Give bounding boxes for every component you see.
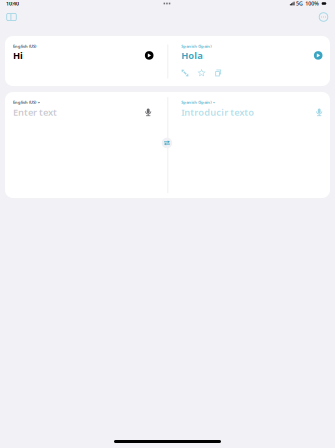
- staticText: Hola: [181, 49, 203, 62]
- button[interactable]: Dictate in Spanish: [311, 107, 330, 117]
- staticText: 10:40: [6, 0, 19, 7]
- button[interactable]: Spanish (Spain): [181, 92, 215, 105]
- button[interactable]: Dictate in English: [140, 107, 167, 117]
- button[interactable]: Copy: [214, 69, 222, 77]
- staticText: English (US): [13, 43, 36, 49]
- staticText: Introducir texto: [181, 106, 254, 118]
- staticText: English (US): [13, 99, 36, 105]
- button[interactable]: Full Screen: [181, 69, 197, 77]
- button[interactable]: Play English translation: [141, 50, 167, 61]
- button[interactable]: Play Spanish translation: [310, 50, 330, 61]
- staticText: Spanish (Spain): [181, 99, 211, 105]
- button[interactable]: Show Sidebar: [2, 11, 21, 23]
- button[interactable]: More: [314, 11, 333, 23]
- staticText: Spanish (Spain): [181, 43, 211, 49]
- staticText: 5G: [296, 0, 303, 7]
- staticText: Enter text: [13, 106, 57, 118]
- button[interactable]: English (US): [13, 92, 40, 105]
- staticText: Hi: [13, 49, 23, 62]
- button[interactable]: Swap languages: [162, 138, 172, 148]
- button[interactable]: Add to Favorites: [197, 69, 214, 77]
- staticText: 100%: [305, 0, 319, 7]
